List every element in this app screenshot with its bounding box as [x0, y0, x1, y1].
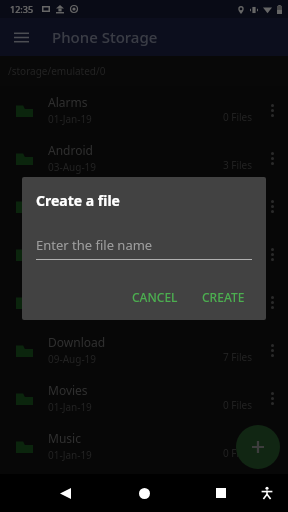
button[interactable]: Music — [0, 422, 288, 470]
button[interactable]: Back — [50, 478, 80, 508]
staticText: DCIM — [48, 190, 80, 206]
button[interactable]: More options — [262, 100, 282, 120]
staticText: Enter the file name — [36, 236, 153, 254]
staticText: CANCEL — [132, 289, 178, 305]
button[interactable]: Add — [236, 425, 280, 469]
staticText: 01-Jan-19 — [48, 112, 92, 126]
staticText: Notifications — [48, 475, 120, 491]
staticText: 7 Files — [222, 350, 252, 364]
button[interactable]: More options — [262, 244, 282, 264]
button[interactable]: Documents — [0, 230, 288, 278]
staticText: Phone Storage — [52, 27, 158, 47]
staticText: 0 Files — [222, 446, 252, 460]
button[interactable]: CANCEL — [124, 284, 186, 310]
staticText: Alarms — [48, 94, 88, 110]
staticText: Music — [48, 430, 81, 446]
button[interactable]: More options — [262, 388, 282, 408]
button[interactable]: Accessibility — [254, 480, 280, 506]
staticText: 12:35 — [10, 3, 34, 15]
staticText: 0 Files — [222, 110, 252, 124]
button[interactable]: Notifications — [0, 470, 288, 512]
button[interactable]: DCIM — [0, 182, 288, 230]
staticText: Android — [48, 142, 93, 158]
staticText: Download — [48, 334, 106, 350]
button[interactable]: More options — [262, 481, 282, 501]
button[interactable]: Downloads — [0, 278, 288, 326]
button[interactable]: CREATE — [194, 284, 253, 310]
button[interactable]: Movies — [0, 374, 288, 422]
staticText: CREATE — [202, 289, 245, 305]
staticText: 3 Files — [222, 158, 252, 172]
staticText: 01-Jan-19 — [48, 448, 92, 462]
staticText: 01-Jan-19 — [48, 256, 92, 270]
staticText: Create a file — [36, 191, 120, 210]
staticText: 09-Aug-19 — [48, 352, 97, 366]
button[interactable]: Download — [0, 326, 288, 374]
staticText: 01-Jan-19 — [48, 400, 92, 414]
button[interactable]: Recent apps — [206, 478, 236, 508]
button[interactable]: More options — [262, 148, 282, 168]
staticText: /storage/emulated/0 — [8, 64, 106, 78]
button[interactable]: More options — [262, 436, 282, 456]
staticText: 0 Files — [222, 491, 252, 505]
button[interactable]: Open navigation menu — [8, 24, 34, 50]
button[interactable]: Android — [0, 134, 288, 182]
staticText: Movies — [48, 382, 88, 398]
staticText: 0 Files — [222, 398, 252, 412]
button[interactable]: Alarms — [0, 86, 288, 134]
staticText: Documents — [48, 238, 113, 254]
staticText: 03-Aug-19 — [48, 160, 97, 174]
staticText: 0 Files — [222, 254, 252, 268]
button[interactable]: Home — [129, 478, 159, 508]
staticText: 01-Jan-19 — [48, 493, 92, 507]
button[interactable]: More options — [262, 340, 282, 360]
button[interactable]: More options — [262, 292, 282, 312]
button[interactable]: More options — [262, 196, 282, 216]
